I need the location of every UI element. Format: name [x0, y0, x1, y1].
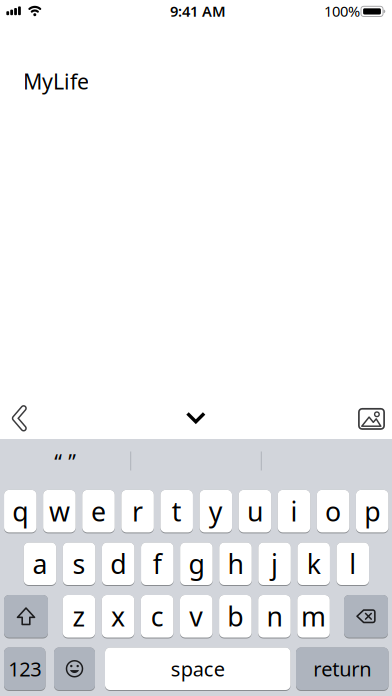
staticText: y [209, 493, 223, 529]
button[interactable]: j [258, 542, 291, 586]
button[interactable]: w [43, 490, 76, 533]
button[interactable] [54, 647, 95, 691]
staticText: t [172, 493, 182, 529]
button[interactable]: q [4, 490, 37, 533]
button[interactable]: p [356, 490, 388, 533]
staticText: “ ” [54, 448, 76, 476]
button[interactable] [359, 409, 384, 429]
staticText: space [171, 655, 225, 682]
button[interactable]: k [297, 542, 330, 586]
button[interactable]: i [278, 490, 310, 533]
button[interactable]: l [337, 542, 369, 586]
button[interactable]: v [180, 595, 212, 638]
staticText: 100% [324, 1, 360, 21]
staticText: p [364, 493, 380, 529]
staticText: q [12, 493, 28, 529]
staticText: m [301, 598, 326, 634]
button[interactable]: return [296, 647, 388, 691]
button[interactable]: x [102, 595, 134, 638]
button[interactable]: e [82, 490, 115, 533]
button[interactable]: space [105, 647, 290, 691]
staticText: e [91, 493, 106, 529]
button[interactable]: r [121, 490, 154, 533]
button[interactable]: h [219, 542, 252, 586]
button[interactable]: u [239, 490, 271, 533]
staticText: f [153, 546, 162, 581]
button[interactable]: d [102, 542, 134, 586]
staticText: v [189, 598, 203, 634]
button[interactable]: 123 [4, 647, 45, 691]
staticText: h [227, 546, 243, 581]
button[interactable] [4, 595, 48, 638]
staticText: s [73, 546, 86, 581]
button[interactable]: t [160, 490, 193, 533]
staticText: 123 [8, 655, 41, 682]
staticText: n [266, 598, 282, 634]
button[interactable]: y [200, 490, 232, 533]
staticText: k [307, 546, 321, 581]
staticText: a [32, 546, 47, 581]
staticText: MyLife [23, 67, 89, 95]
staticText: return [313, 655, 371, 682]
button[interactable] [186, 412, 206, 423]
button[interactable]: s [63, 542, 95, 586]
button[interactable]: a [24, 542, 56, 586]
staticText: g [188, 546, 204, 581]
button[interactable]: “ ” [5, 440, 125, 484]
staticText: r [132, 493, 143, 529]
staticText: l [349, 546, 356, 581]
staticText: w [49, 493, 70, 529]
staticText: o [325, 493, 341, 529]
button[interactable]: b [219, 595, 252, 638]
button[interactable]: f [141, 542, 174, 586]
button[interactable] [13, 406, 26, 430]
staticText: c [151, 598, 164, 634]
button[interactable]: n [258, 595, 291, 638]
staticText: d [110, 546, 126, 581]
staticText: x [111, 598, 125, 634]
button[interactable] [344, 595, 388, 638]
button[interactable]: m [297, 595, 330, 638]
staticText: b [227, 598, 243, 634]
staticText: 9:41 AM [170, 1, 226, 21]
staticText: i [290, 493, 297, 529]
button[interactable]: z [63, 595, 95, 638]
button[interactable]: o [317, 490, 349, 533]
staticText: z [72, 598, 85, 634]
staticText: j [271, 546, 278, 581]
staticText: u [247, 493, 263, 529]
button[interactable]: c [141, 595, 173, 638]
button[interactable]: g [180, 542, 213, 586]
